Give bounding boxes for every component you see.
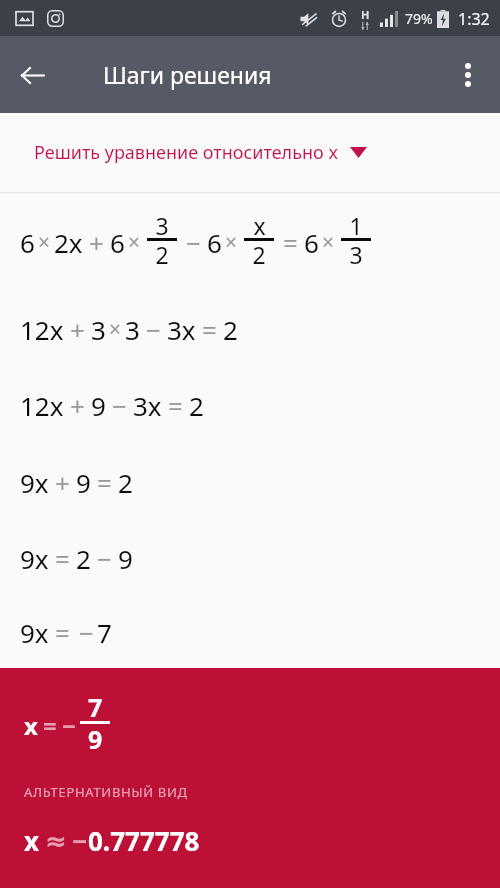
staticText: 12x: [20, 388, 64, 423]
staticText: 9: [88, 722, 103, 756]
staticText: 6: [207, 225, 222, 260]
staticText: =: [43, 709, 57, 742]
button[interactable]: 6: [0, 193, 500, 291]
staticText: 2: [223, 312, 238, 347]
staticText: 79%: [405, 9, 433, 28]
staticText: +: [70, 312, 85, 347]
staticText: 7: [97, 615, 112, 650]
staticText: −: [79, 615, 94, 650]
button[interactable]: x: [0, 668, 500, 783]
staticText: 9: [91, 388, 106, 423]
staticText: 3: [349, 239, 363, 270]
staticText: =: [168, 388, 183, 423]
staticText: =: [55, 541, 70, 576]
staticText: 6: [304, 225, 319, 260]
staticText: −: [72, 823, 88, 858]
staticText: 6: [110, 225, 125, 260]
staticText: 2: [252, 239, 266, 270]
staticText: 2: [189, 388, 204, 423]
staticText: 9: [76, 465, 91, 500]
staticText: =: [283, 225, 298, 260]
staticText: ×: [225, 228, 238, 257]
button[interactable]: 12x: [0, 367, 500, 444]
staticText: 9x: [20, 615, 49, 650]
staticText: =: [202, 312, 217, 347]
button[interactable]: Ещё: [444, 51, 492, 99]
staticText: −: [97, 541, 112, 576]
button[interactable]: Решить уравнение относительно x: [0, 113, 500, 192]
staticText: +: [70, 388, 85, 423]
staticText: ×: [128, 228, 141, 257]
staticText: =: [97, 465, 112, 500]
staticText: ≈: [45, 826, 67, 856]
staticText: H: [361, 7, 370, 22]
staticText: 9x: [20, 541, 49, 576]
staticText: 1: [349, 210, 363, 241]
staticText: 1:32: [458, 8, 490, 30]
staticText: 3: [91, 312, 106, 347]
staticText: −: [146, 312, 161, 347]
staticText: −: [62, 709, 76, 742]
staticText: −: [186, 225, 201, 260]
button[interactable]: 9x: [0, 444, 500, 520]
button[interactable]: 9x: [0, 597, 500, 668]
staticText: ×: [38, 228, 51, 257]
button[interactable]: Назад: [8, 51, 56, 99]
staticText: +: [55, 465, 70, 500]
staticText: 2: [118, 465, 133, 500]
staticText: −: [112, 388, 127, 423]
staticText: АЛЬТЕРНАТИВНЫЙ ВИД: [24, 783, 188, 801]
staticText: =: [55, 615, 70, 650]
staticText: ×: [109, 315, 122, 344]
staticText: 9x: [20, 465, 49, 500]
staticText: 3x: [133, 388, 162, 423]
staticText: 2: [155, 239, 169, 270]
staticText: x: [24, 709, 38, 742]
staticText: ×: [322, 228, 335, 257]
staticText: 3x: [167, 312, 196, 347]
staticText: Решить уравнение относительно x: [34, 140, 338, 165]
staticText: 0.777778: [88, 823, 200, 858]
staticText: 12x: [20, 312, 64, 347]
staticText: 7: [88, 690, 103, 724]
staticText: 6: [20, 225, 35, 260]
button[interactable]: 12x: [0, 291, 500, 367]
staticText: 3: [155, 210, 169, 241]
staticText: Шаги решения: [103, 59, 272, 90]
staticText: 2x: [54, 225, 83, 260]
staticText: x: [24, 823, 40, 858]
staticText: x: [253, 210, 266, 241]
staticText: 3: [125, 312, 140, 347]
button[interactable]: x: [0, 823, 500, 858]
staticText: 9: [118, 541, 133, 576]
staticText: 2: [76, 541, 91, 576]
staticText: +: [89, 225, 104, 260]
button[interactable]: 9x: [0, 520, 500, 597]
